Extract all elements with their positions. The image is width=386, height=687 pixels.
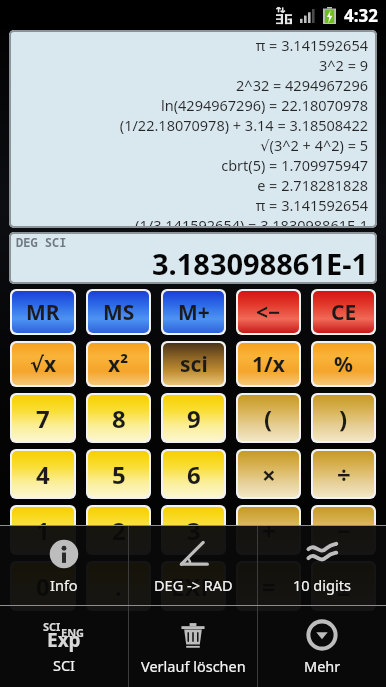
button[interactable]: Info bbox=[0, 526, 128, 605]
button[interactable]: % bbox=[313, 343, 374, 385]
button[interactable]: ÷ bbox=[313, 451, 374, 497]
staticText: ± bbox=[337, 570, 351, 603]
staticText: SCI bbox=[53, 655, 76, 675]
button[interactable]: ) bbox=[313, 395, 374, 441]
button[interactable]: M+ bbox=[163, 291, 224, 333]
button[interactable]: 8 bbox=[88, 395, 149, 441]
staticText: 8 bbox=[112, 402, 126, 435]
staticText: √(3^2 + 4^2) = 5 bbox=[15, 135, 368, 155]
staticText: 1 bbox=[36, 514, 50, 547]
staticText: (1/22.18070978) + 3.14 = 3.18508422 bbox=[15, 115, 368, 135]
button[interactable]: sci bbox=[163, 343, 224, 385]
staticText: ÷ bbox=[337, 458, 351, 491]
button[interactable]: 2 bbox=[88, 507, 149, 553]
staticText: CE bbox=[331, 298, 357, 327]
staticText: DEG -> RAD bbox=[154, 575, 233, 595]
button[interactable]: ± bbox=[313, 563, 374, 609]
staticText: ( bbox=[264, 402, 273, 435]
staticText: EXP bbox=[171, 570, 216, 603]
staticText: √x bbox=[30, 350, 57, 379]
button[interactable]: MS bbox=[88, 291, 149, 333]
staticText: 3 bbox=[187, 514, 201, 547]
button[interactable]: 1 bbox=[12, 507, 74, 553]
staticText: e = 2.718281828 bbox=[15, 175, 368, 195]
button[interactable]: 7 bbox=[12, 395, 74, 441]
button[interactable]: Mehr bbox=[258, 606, 386, 687]
staticText: 7 bbox=[36, 402, 50, 435]
staticText: cbrt(5) = 1.709975947 bbox=[15, 155, 368, 175]
button[interactable]: EXP bbox=[163, 563, 224, 609]
staticText: 3^2 = 9 bbox=[15, 55, 368, 75]
staticText: M+ bbox=[178, 298, 210, 327]
staticText: x² bbox=[108, 350, 129, 379]
staticText: 6 bbox=[187, 458, 201, 491]
button[interactable]: Verlauf löschen bbox=[129, 606, 257, 687]
staticText: <− bbox=[256, 298, 281, 327]
button[interactable]: + bbox=[238, 507, 299, 553]
staticText: 2 bbox=[112, 514, 126, 547]
button[interactable]: SCI ENG Exp bbox=[0, 606, 128, 687]
button[interactable]: CE bbox=[313, 291, 374, 333]
staticText: Verlauf löschen bbox=[141, 656, 246, 676]
button[interactable]: √x bbox=[12, 343, 74, 385]
button[interactable]: 0 bbox=[12, 563, 74, 609]
button[interactable]: = bbox=[238, 563, 299, 609]
staticText: 10 digits bbox=[293, 575, 351, 595]
button[interactable]: DEG -> RAD bbox=[129, 526, 257, 605]
staticText: MR bbox=[26, 298, 60, 327]
button[interactable]: × bbox=[238, 451, 299, 497]
staticText: × bbox=[262, 458, 276, 491]
staticText: Exp bbox=[47, 627, 81, 653]
button[interactable]: 9 bbox=[163, 395, 224, 441]
button[interactable]: . bbox=[88, 563, 149, 609]
staticText: = bbox=[262, 570, 276, 603]
staticText: − bbox=[337, 514, 351, 547]
button[interactable]: π = 3.141592654 bbox=[9, 30, 377, 228]
staticText: 2^32 = 4294967296 bbox=[15, 75, 368, 95]
staticText: (1/3.141592654) = 3.183098861E-1 bbox=[15, 215, 368, 228]
staticText: % bbox=[334, 350, 353, 379]
button[interactable]: 10 digits bbox=[258, 526, 386, 605]
staticText: 3.183098861E-1 bbox=[152, 244, 369, 283]
staticText: MS bbox=[103, 298, 135, 327]
staticText: 1/x bbox=[252, 350, 285, 379]
staticText: 5 bbox=[112, 458, 126, 491]
staticText: 4 bbox=[36, 458, 50, 491]
staticText: + bbox=[262, 514, 276, 547]
button[interactable]: 4 bbox=[12, 451, 74, 497]
staticText: 4:32 bbox=[344, 4, 378, 27]
staticText: ) bbox=[339, 402, 348, 435]
staticText: ENG bbox=[61, 625, 85, 640]
staticText: sci bbox=[180, 350, 208, 379]
staticText: π = 3.141592654 bbox=[15, 35, 368, 55]
staticText: ln(4294967296) = 22.18070978 bbox=[15, 95, 368, 115]
staticText: 0 bbox=[36, 570, 50, 603]
staticText: DEG SCI bbox=[16, 234, 67, 250]
staticText: 9 bbox=[187, 402, 201, 435]
button[interactable]: MR bbox=[12, 291, 74, 333]
staticText: Mehr bbox=[304, 656, 341, 676]
button[interactable]: <− bbox=[238, 291, 299, 333]
button[interactable]: 3 bbox=[163, 507, 224, 553]
button[interactable]: 6 bbox=[163, 451, 224, 497]
button[interactable]: − bbox=[313, 507, 374, 553]
button[interactable]: ( bbox=[238, 395, 299, 441]
button[interactable]: 1/x bbox=[238, 343, 299, 385]
button[interactable]: x² bbox=[88, 343, 149, 385]
button[interactable]: 5 bbox=[88, 451, 149, 497]
staticText: Info bbox=[50, 575, 78, 595]
button[interactable]: DEG SCI bbox=[9, 232, 377, 284]
staticText: π = 3.141592654 bbox=[15, 195, 368, 215]
staticText: SCI bbox=[43, 619, 61, 634]
